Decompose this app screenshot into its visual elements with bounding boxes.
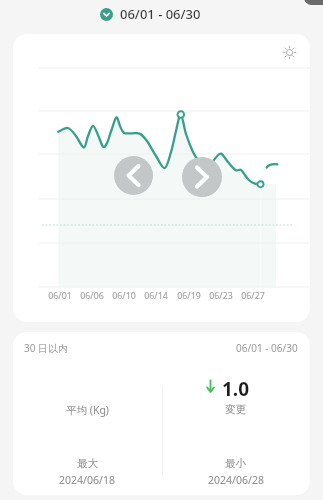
- staticText: 06/06: [80, 290, 104, 302]
- staticText: 06/01 - 06/30: [236, 341, 298, 355]
- staticText: 06/19: [177, 290, 201, 302]
- button[interactable]: Tips: [277, 40, 301, 64]
- staticText: 最小: [225, 457, 246, 470]
- staticText: 2024/06/18: [59, 473, 115, 487]
- button[interactable]: Next period: [182, 157, 222, 197]
- staticText: 06/14: [144, 290, 168, 302]
- staticText: 06/23: [209, 290, 233, 302]
- button[interactable]: 平均 (Kg): [13, 376, 161, 417]
- button[interactable]: 1.0: [161, 376, 310, 416]
- button[interactable]: 06/01 - 06/30: [96, 3, 205, 25]
- staticText: 06/10: [112, 290, 136, 302]
- button[interactable]: 最小: [161, 457, 310, 487]
- button[interactable]: 最大: [13, 457, 161, 487]
- staticText: 2024/06/28: [208, 473, 264, 487]
- staticText: 変更: [225, 403, 246, 416]
- staticText: 06/01 - 06/30: [120, 5, 201, 23]
- button[interactable]: Previous period: [114, 156, 153, 195]
- staticText: 06/27: [241, 290, 265, 302]
- staticText: 06/01: [48, 290, 72, 302]
- staticText: 平均 (Kg): [66, 403, 109, 417]
- staticText: 1.0: [222, 376, 250, 396]
- staticText: 最大: [77, 457, 98, 470]
- staticText: 30 日以内: [24, 341, 69, 355]
